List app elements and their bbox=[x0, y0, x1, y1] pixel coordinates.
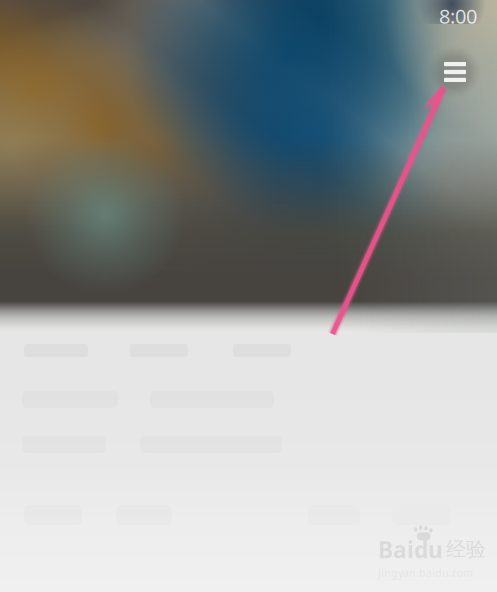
staticText: Baidu bbox=[378, 534, 443, 564]
staticText: 经验 bbox=[446, 537, 486, 562]
button[interactable]: Menu bbox=[428, 45, 482, 99]
staticText: 8:00 bbox=[439, 3, 477, 29]
